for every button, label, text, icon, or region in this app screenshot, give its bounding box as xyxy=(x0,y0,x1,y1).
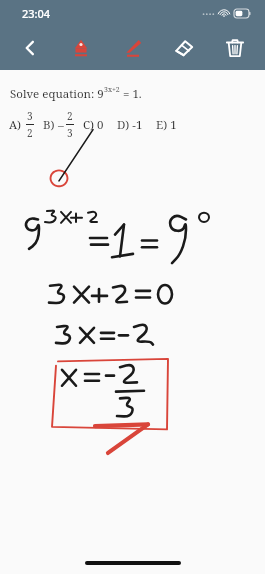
staticText: D) -1 xyxy=(117,117,143,133)
staticText: B) xyxy=(43,117,55,133)
staticText: 2 xyxy=(27,126,33,140)
button[interactable]: Pen xyxy=(113,28,153,68)
staticText: E) 1 xyxy=(156,117,177,133)
staticText: 3x+2 xyxy=(104,85,120,95)
staticText: = 1. xyxy=(120,86,142,102)
button[interactable]: Highlighter xyxy=(61,28,101,68)
button[interactable]: Eraser xyxy=(164,28,204,68)
staticText: A) xyxy=(9,117,22,133)
button[interactable]: Back xyxy=(10,28,50,68)
staticText: 3 xyxy=(27,109,33,123)
staticText: C) 0 xyxy=(83,117,104,133)
button[interactable]: Delete xyxy=(215,28,255,68)
staticText: 2 xyxy=(67,109,73,123)
staticText: Solve equation: 9 xyxy=(10,86,104,102)
staticText: – xyxy=(58,117,64,133)
staticText: 23:04 xyxy=(22,6,51,21)
staticText: 3 xyxy=(67,126,73,140)
